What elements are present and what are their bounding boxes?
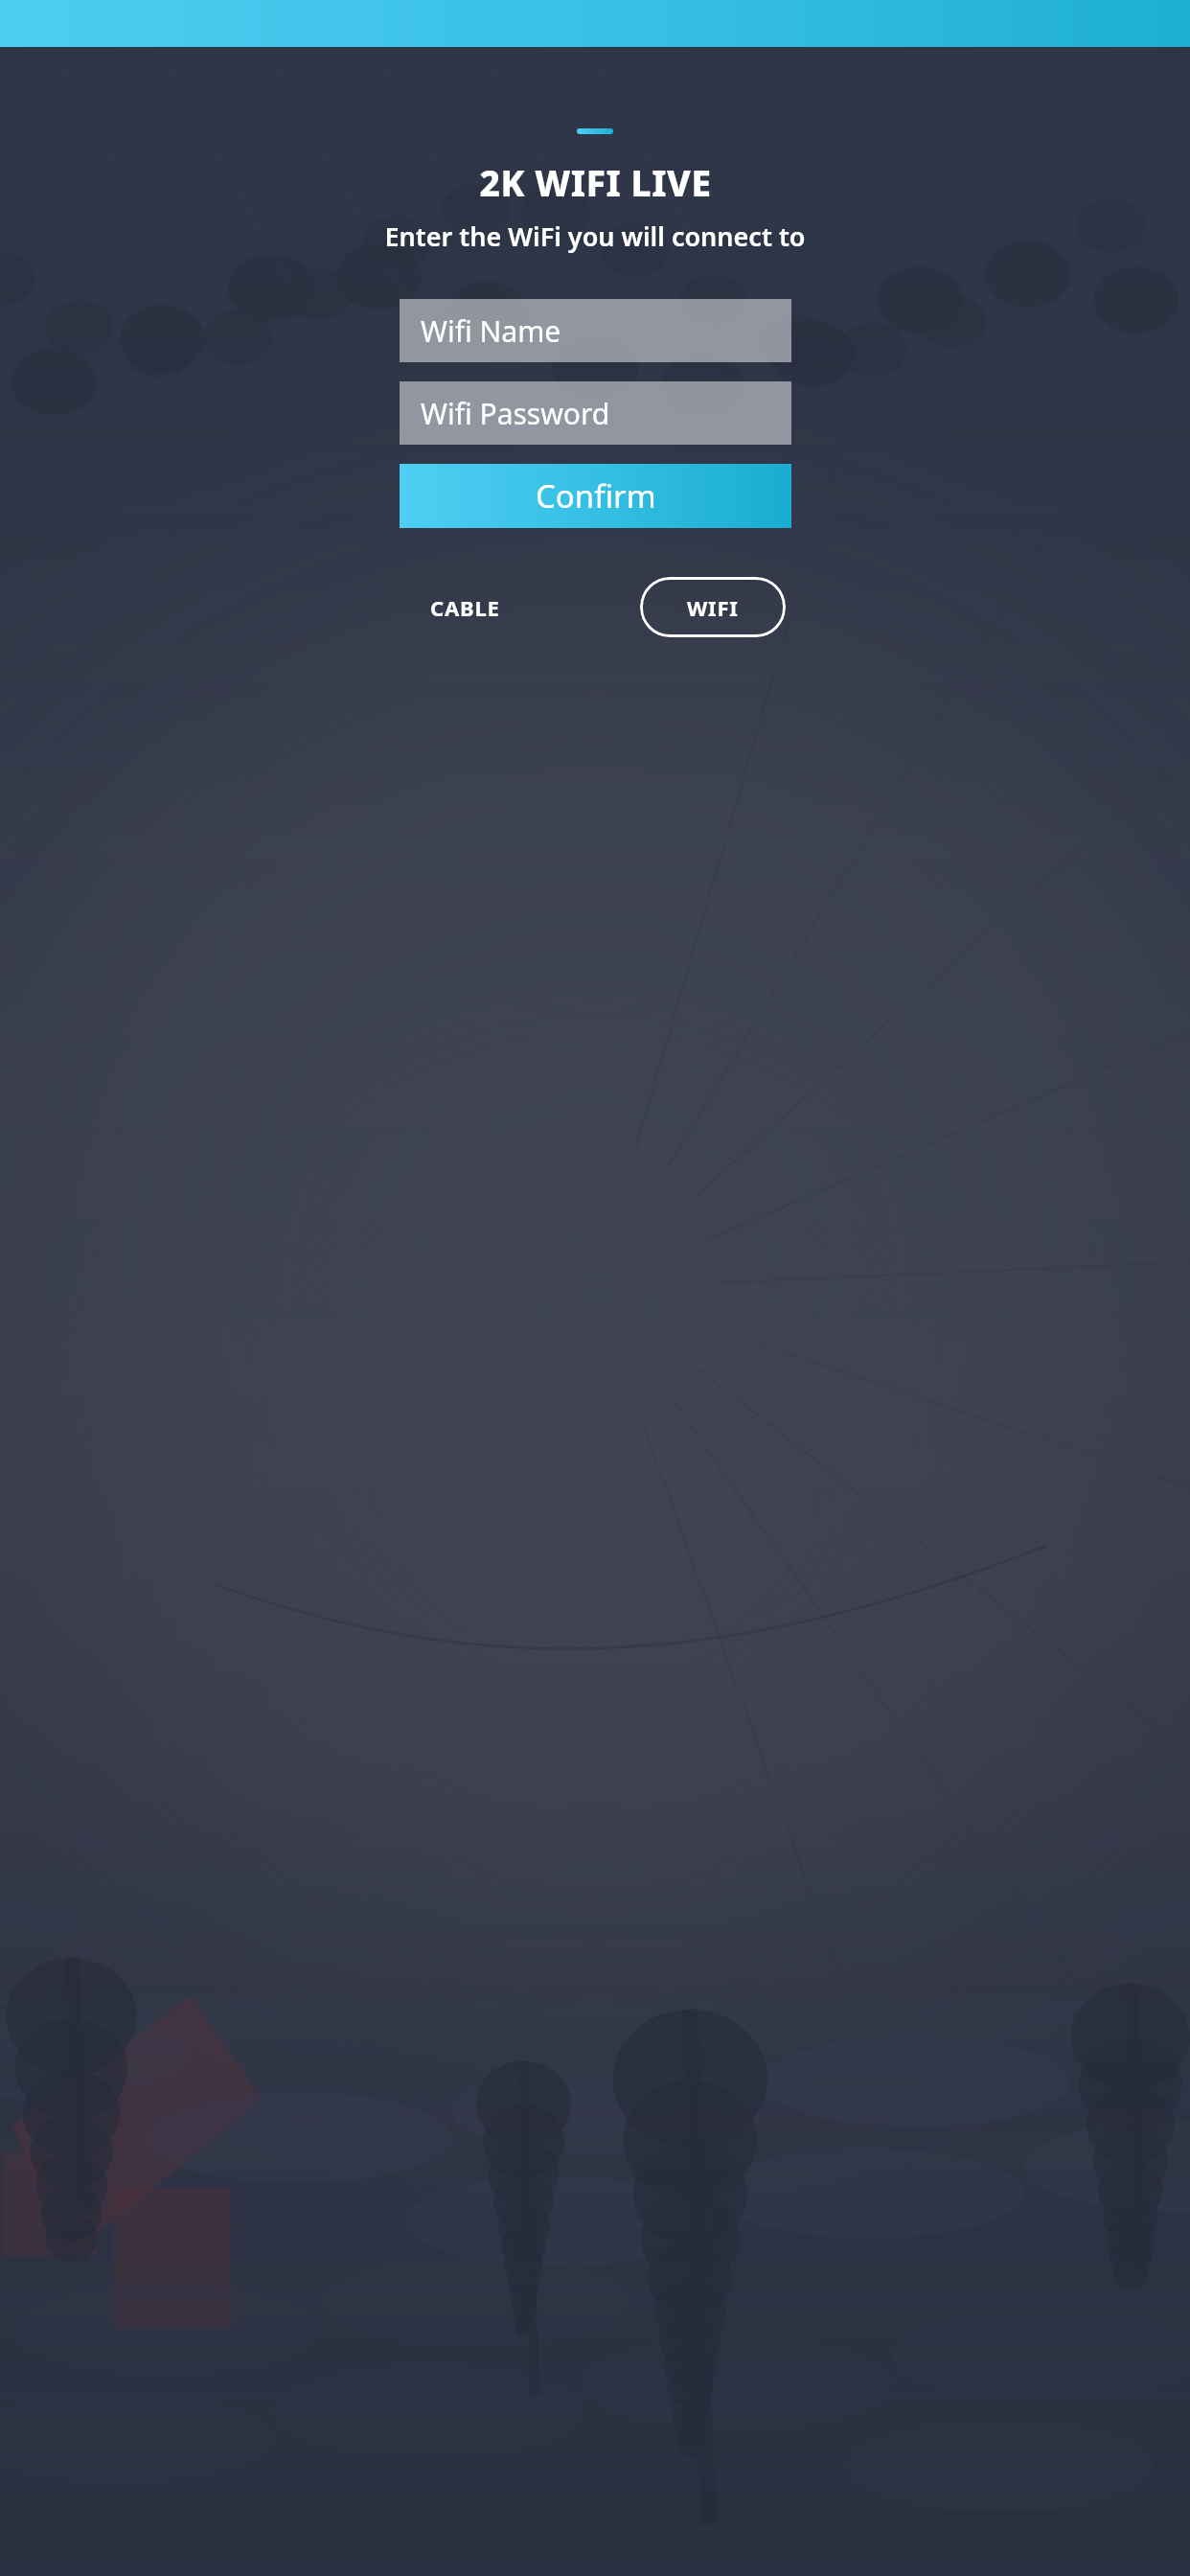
staticText: WIFI — [687, 593, 739, 622]
staticText: Wifi Password — [421, 394, 610, 433]
button[interactable]: WIFI — [640, 577, 786, 637]
staticText: Wifi Name — [421, 311, 561, 351]
button[interactable]: CABLE — [430, 593, 500, 622]
button[interactable]: Confirm — [400, 464, 791, 528]
staticText: CABLE — [430, 593, 500, 622]
staticText: Enter the WiFi you will connect to — [384, 218, 806, 254]
button[interactable]: Wifi Name — [400, 299, 791, 362]
staticText: 2K WIFI LIVE — [479, 158, 712, 206]
staticText: Confirm — [536, 474, 656, 517]
button[interactable]: Wifi Password — [400, 381, 791, 445]
